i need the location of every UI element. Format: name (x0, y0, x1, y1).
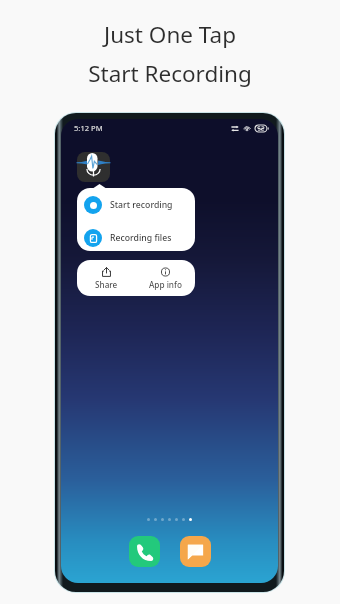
button[interactable]: Voice Recorder app (77, 152, 111, 182)
button[interactable]: App info (136, 260, 195, 296)
staticText: Share (95, 279, 118, 290)
staticText: Recording files (110, 232, 172, 244)
button[interactable]: Messages (180, 536, 211, 567)
button[interactable]: Recording files (77, 225, 195, 250)
button[interactable]: Phone (129, 536, 160, 567)
staticText: App info (149, 279, 182, 290)
staticText: 5:12 PM (74, 123, 103, 133)
staticText: Start Recording (88, 58, 252, 89)
button[interactable]: Share (77, 260, 136, 296)
staticText: Just One Tap (104, 19, 236, 50)
button[interactable]: Start recording (77, 192, 195, 217)
staticText: Start recording (110, 199, 173, 211)
